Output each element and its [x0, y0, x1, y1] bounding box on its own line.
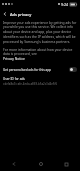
- button[interactable]: Get personalised ads for this app: [0, 65, 80, 74]
- button[interactable]: Recent apps: [53, 157, 80, 171]
- button[interactable]: Home: [28, 157, 53, 171]
- button[interactable]: User ID for ads: [0, 74, 80, 88]
- staticText: 9:24: [61, 2, 69, 7]
- staticText: For more information about how your devi…: [3, 47, 77, 55]
- staticText: Get personalised ads for this app: [3, 68, 51, 72]
- staticText: cdefa8a9-cafe-4eda-a869-b5a2c3d4e5f6: [3, 82, 58, 86]
- button[interactable]: Back: [0, 157, 28, 171]
- button[interactable]: Privacy Notice: [3, 56, 25, 60]
- staticText: Ads privacy: [10, 12, 32, 17]
- staticText: Improve your ads experience by getting a…: [3, 20, 77, 43]
- staticText: User ID for ads: [3, 77, 25, 81]
- button[interactable]: Back: [0, 9, 10, 19]
